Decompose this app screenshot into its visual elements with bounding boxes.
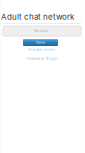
- button[interactable]: Home: [23, 39, 58, 46]
- staticText: Powered by: [27, 57, 46, 60]
- button[interactable]: View web version: [28, 48, 55, 51]
- staticText: Blogger: [46, 57, 58, 60]
- staticText: No posts.: [34, 29, 49, 33]
- staticText: Adult chat network: [1, 12, 74, 22]
- staticText: View web version: [28, 48, 55, 51]
- staticText: Home: [36, 41, 45, 44]
- button[interactable]: Blogger: [46, 57, 58, 60]
